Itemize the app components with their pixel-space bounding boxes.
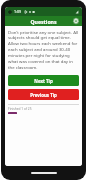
button[interactable]: Previous Tip — [8, 89, 79, 100]
button[interactable]: Settings — [72, 17, 80, 25]
staticText: Finished 1 of 25 — [8, 107, 32, 111]
staticText: Don't prioritise any one subject. All su… — [8, 29, 79, 71]
button[interactable]: Next Tip — [8, 75, 79, 86]
staticText: 1:09 — [14, 9, 22, 14]
staticText: Questions — [30, 18, 57, 25]
staticText: Previous Tip — [30, 92, 57, 98]
staticText: Next Tip — [34, 78, 53, 84]
